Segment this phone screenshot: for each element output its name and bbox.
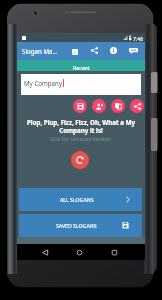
button[interactable]: Feedback bbox=[127, 44, 140, 57]
staticText: Plop, Plop, Fizz, Fizz, Oh, What a My Co… bbox=[26, 118, 136, 134]
button[interactable]: Info bbox=[107, 44, 120, 57]
button[interactable]: Share bbox=[130, 99, 144, 113]
staticText: 7:46 bbox=[133, 35, 144, 42]
button[interactable]: Save bbox=[73, 99, 87, 113]
button[interactable]: Share bbox=[88, 44, 101, 57]
button[interactable]: Edit bbox=[68, 45, 81, 58]
staticText: Slogan Ma... bbox=[22, 47, 58, 55]
button[interactable]: Generate slogan bbox=[71, 151, 89, 169]
button[interactable]: Copy bbox=[111, 99, 125, 113]
button[interactable]: ALL SLOGANS bbox=[19, 188, 142, 211]
staticText: Click For Generate Random bbox=[50, 136, 112, 143]
staticText: Recent bbox=[73, 64, 90, 71]
staticText: ALL SLOGANS bbox=[60, 196, 94, 203]
button[interactable]: SAVED SLOGANS bbox=[19, 214, 142, 237]
button[interactable]: Add person bbox=[92, 99, 106, 113]
button[interactable]: My Company bbox=[21, 74, 141, 95]
staticText: SAVED SLOGANS bbox=[56, 222, 97, 229]
staticText: My Company bbox=[24, 79, 63, 87]
